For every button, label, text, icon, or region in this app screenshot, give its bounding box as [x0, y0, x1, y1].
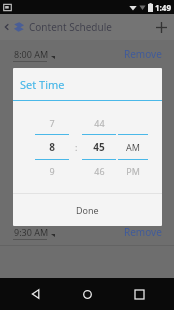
button[interactable]: Navigate up: [2, 14, 12, 40]
staticText: Remove: [124, 225, 162, 239]
staticText: Done: [76, 204, 99, 216]
staticText: 46: [94, 165, 105, 177]
button[interactable]: 44: [82, 112, 116, 182]
button[interactable]: AM: [118, 112, 148, 182]
staticText: :: [75, 141, 78, 153]
staticText: Remove: [124, 47, 162, 61]
button[interactable]: Remove: [124, 47, 162, 61]
button[interactable]: 7: [35, 112, 69, 182]
button[interactable]: Remove: [124, 225, 162, 239]
staticText: 1:49: [155, 2, 171, 13]
staticText: PM: [126, 165, 140, 177]
staticText: 45: [93, 140, 105, 154]
staticText: 9: [49, 165, 55, 177]
button[interactable]: 8:00 AM: [0, 41, 174, 67]
staticText: 8:00 AM: [14, 48, 49, 60]
staticText: 44: [94, 117, 105, 129]
button[interactable]: Add schedule: [148, 14, 174, 40]
staticText: 8: [49, 140, 55, 154]
staticText: Set Time: [20, 77, 65, 92]
button[interactable]: Home: [71, 278, 103, 310]
staticText: 7: [49, 117, 55, 129]
button[interactable]: Recent apps: [123, 278, 155, 310]
button[interactable]: Back: [20, 278, 52, 310]
staticText: AM: [126, 141, 140, 153]
button[interactable]: Done: [13, 194, 162, 226]
staticText: 9:30 AM: [14, 226, 49, 238]
button[interactable]: 9:30 AM: [0, 219, 174, 245]
staticText: Content Schedule: [29, 20, 112, 34]
